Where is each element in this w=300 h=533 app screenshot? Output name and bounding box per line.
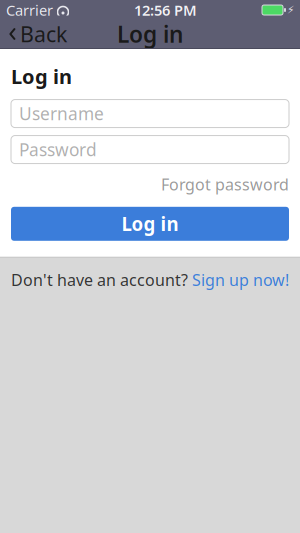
button[interactable]: Forgot password	[161, 170, 289, 199]
staticText: Back	[20, 20, 67, 48]
staticText: Username	[19, 102, 104, 125]
staticText: Forgot password	[161, 174, 289, 195]
button[interactable]: Back	[0, 20, 75, 48]
staticText: 12:56 PM	[134, 0, 197, 20]
staticText: Carrier	[6, 0, 53, 20]
staticText: Sign up now!	[192, 269, 289, 290]
button[interactable]: Don't have an account?	[0, 258, 300, 302]
staticText: Password	[19, 138, 97, 161]
staticText: Log in	[121, 211, 178, 236]
button[interactable]: Log in	[11, 207, 289, 241]
staticText: Don't have an account?	[11, 269, 192, 290]
staticText: Log in	[117, 19, 183, 49]
staticText: ⚡︎	[287, 4, 294, 16]
staticText: Log in	[11, 63, 72, 90]
